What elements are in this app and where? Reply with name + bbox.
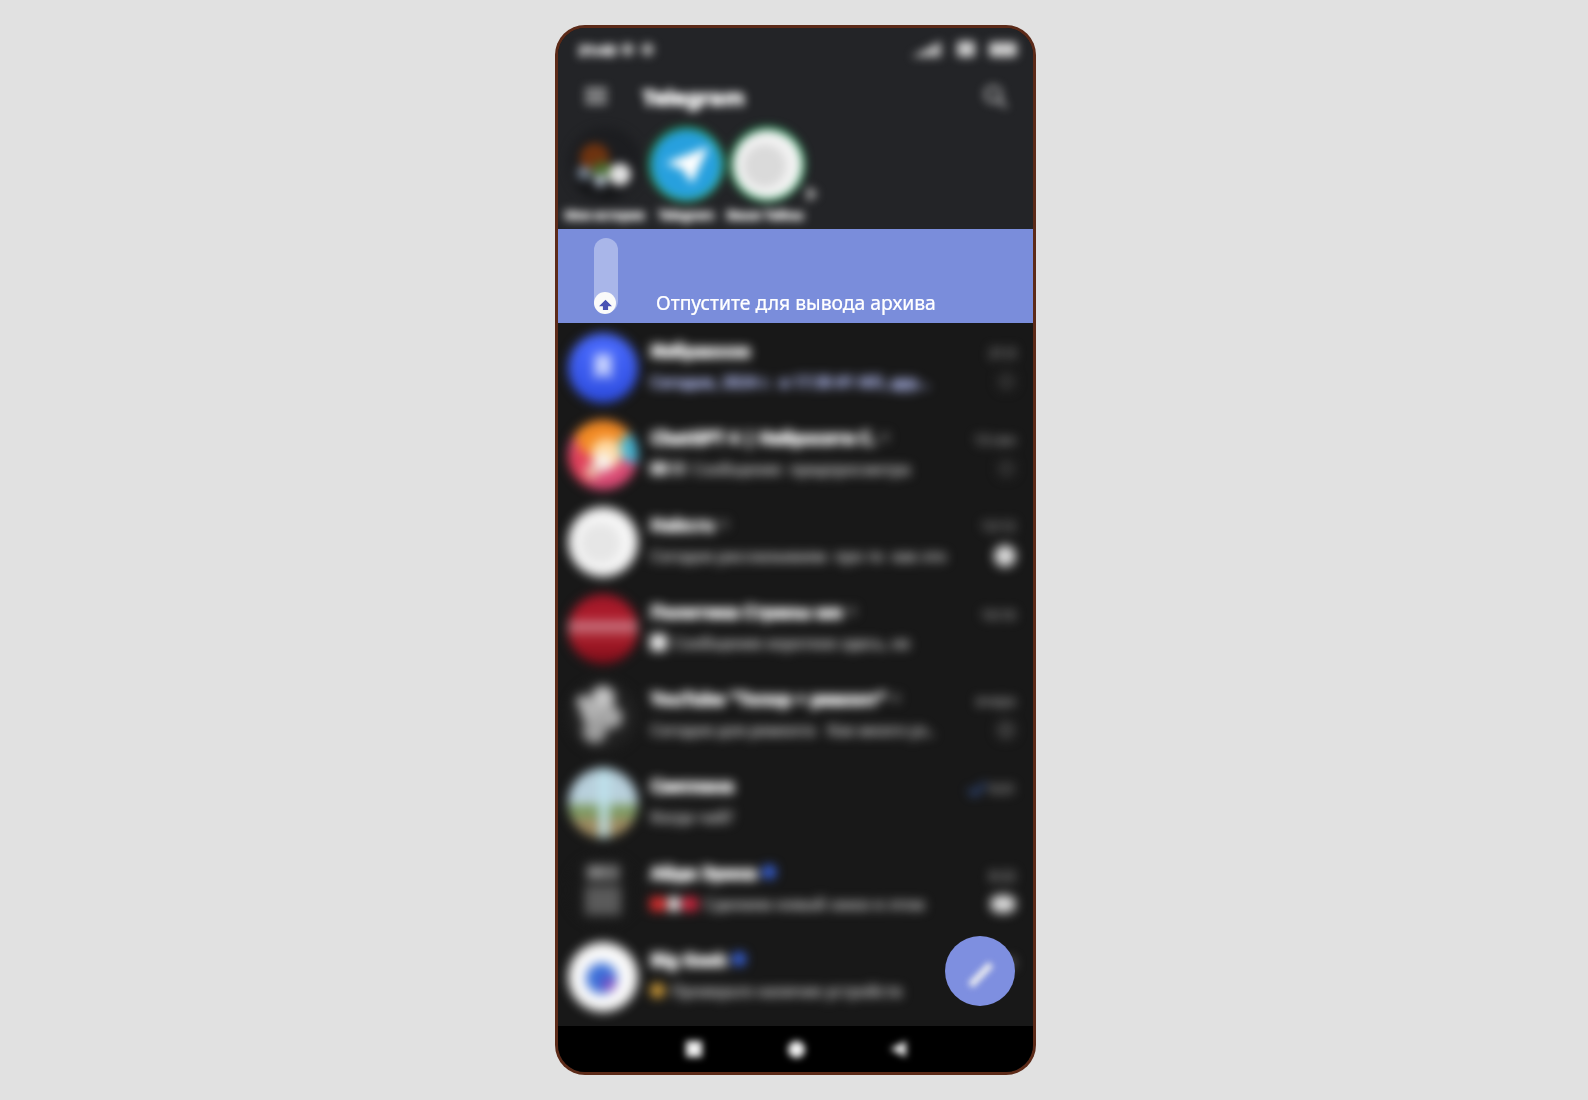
staticText: ChatGPT 4 | Нейросети С.: [650, 426, 876, 450]
button[interactable]: Home: [768, 1026, 824, 1072]
staticText: Избранное: [650, 339, 750, 363]
staticText: Моя история м: [564, 206, 645, 223]
button[interactable]: Айди Эрика: [558, 846, 1033, 933]
staticText: Telegram: [658, 207, 714, 224]
staticText: 9:01: [989, 780, 1016, 798]
button[interactable]: Open navigation menu: [576, 76, 616, 116]
staticText: Ваши Тайны и: [726, 207, 807, 224]
staticText: Сообщение предпросмотра текста даночка: [693, 458, 967, 479]
staticText: Избранное: [651, 339, 751, 363]
button[interactable]: Светлана: [558, 759, 1033, 846]
button[interactable]: Big Geek: [558, 933, 1033, 1020]
staticText: Политика Страны ми: [651, 600, 844, 624]
staticText: Big Geek: [650, 947, 727, 971]
button[interactable]: Back: [870, 1026, 926, 1072]
staticText: Habr.ru: [650, 512, 715, 536]
button[interactable]: ChatGPT 4 | Нейросети С.: [558, 411, 1033, 498]
staticText: Политика Страны ми: [651, 599, 844, 623]
staticText: Ваши Тайны и: [727, 207, 808, 224]
staticText: YouTube "Топор + ремонт": [650, 687, 887, 711]
staticText: Сегодня для ремонта Как много уз..: [651, 719, 936, 740]
staticText: Светлана: [651, 774, 735, 798]
staticText: Политика Страны ми: [650, 600, 843, 624]
button[interactable]: Habr.ru: [558, 498, 1033, 585]
staticText: Моя история м: [565, 206, 646, 223]
button[interactable]: Recent apps: [666, 1026, 722, 1072]
staticText: Habr.ru: [651, 512, 716, 536]
button[interactable]: YouTube "Топор + ремонт": [558, 672, 1033, 759]
staticText: Сегодня рассказываем про то как это устр…: [650, 545, 973, 566]
staticText: Сегодня, 2024 г. в 17:30 #1 ИЛ, дру...: [650, 371, 929, 392]
staticText: Когда чай?: [650, 806, 733, 827]
staticText: Сегодня для ремонта Как много уз..: [650, 719, 935, 740]
staticText: Проверьте наличие устройств Телеграм: [672, 980, 982, 1001]
staticText: Telegram: [658, 206, 714, 223]
staticText: Telegram: [659, 206, 715, 223]
staticText: Моя история м: [564, 207, 645, 224]
staticText: Избранное: [651, 338, 751, 362]
staticText: Сообщение короткое здесь, не интересное …: [673, 632, 973, 653]
staticText: Telegram: [643, 81, 745, 111]
staticText: 21:43: [579, 39, 617, 59]
button[interactable]: Ваши Тайны и: [726, 126, 807, 223]
staticText: Habr.ru: [650, 513, 715, 537]
staticText: Big Geek: [651, 947, 728, 971]
staticText: Сделаем новый заказ в этом месяце: [704, 893, 981, 914]
staticText: 7:45: [989, 954, 1016, 972]
staticText: Сегодня рассказываем про то как это устр…: [651, 545, 974, 566]
staticText: Telegram: [643, 82, 745, 112]
staticText: 21:43: [578, 39, 616, 59]
staticText: ChatGPT 4 | Нейросети С.: [650, 425, 876, 449]
staticText: 21:43: [579, 40, 617, 60]
button[interactable]: Compose new message: [945, 936, 1015, 1006]
staticText: Telegram: [642, 82, 744, 112]
button[interactable]: Политика Страны ми: [558, 585, 1033, 672]
staticText: Айди Эрика: [650, 861, 757, 885]
button[interactable]: Search: [975, 76, 1015, 116]
staticText: Проверьте наличие устройств Телеграм: [671, 980, 981, 1001]
staticText: ChatGPT 4 | Нейросети С.: [651, 426, 877, 450]
staticText: Big Geek: [651, 948, 728, 972]
staticText: Habr.ru: [651, 513, 716, 537]
button[interactable]: Telegram: [645, 126, 726, 223]
staticText: Отпустите для вывода архива: [656, 289, 936, 315]
staticText: Ваши Тайны и: [726, 206, 807, 223]
staticText: Сделаем новый заказ в этом месяце: [705, 893, 982, 914]
button[interactable]: Моя история м: [564, 126, 645, 223]
staticText: 13 сен: [974, 431, 1016, 449]
staticText: Светлана: [651, 773, 735, 797]
staticText: YouTube "Топор + ремонт": [650, 686, 887, 710]
staticText: Избранное: [650, 338, 750, 362]
staticText: вчера: [976, 692, 1016, 710]
staticText: YouTube "Топор + ремонт": [651, 687, 888, 711]
button[interactable]: Избранное: [558, 324, 1033, 411]
staticText: 8:22: [989, 867, 1016, 885]
staticText: Политика Страны ми: [650, 599, 843, 623]
staticText: Big Geek: [650, 948, 727, 972]
staticText: Telegram: [642, 81, 744, 111]
staticText: Сегодня, 2024 г. в 17:30 #1 ИЛ, дру...: [651, 371, 930, 392]
staticText: Ваши Тайны и: [727, 206, 808, 223]
staticText: Айди Эрика: [651, 861, 758, 885]
staticText: Сообщение предпросмотра текста даночка: [692, 458, 966, 479]
staticText: Айди Эрика: [650, 860, 757, 884]
staticText: Telegram: [659, 207, 715, 224]
staticText: Сообщение короткое здесь, не интересное …: [674, 632, 974, 653]
staticText: 12:12: [981, 517, 1016, 535]
staticText: Айди Эрика: [651, 860, 758, 884]
staticText: 21:43: [578, 40, 616, 60]
staticText: Светлана: [650, 773, 734, 797]
staticText: Светлана: [650, 774, 734, 798]
staticText: 10:10: [981, 606, 1016, 624]
button[interactable]: Отпустите для вывода архива: [558, 229, 1033, 323]
staticText: YouTube "Топор + ремонт": [651, 686, 888, 710]
staticText: ChatGPT 4 | Нейросети С.: [651, 425, 877, 449]
staticText: 21:3: [989, 344, 1016, 362]
staticText: Моя история м: [565, 207, 646, 224]
staticText: Когда чай?: [651, 806, 734, 827]
